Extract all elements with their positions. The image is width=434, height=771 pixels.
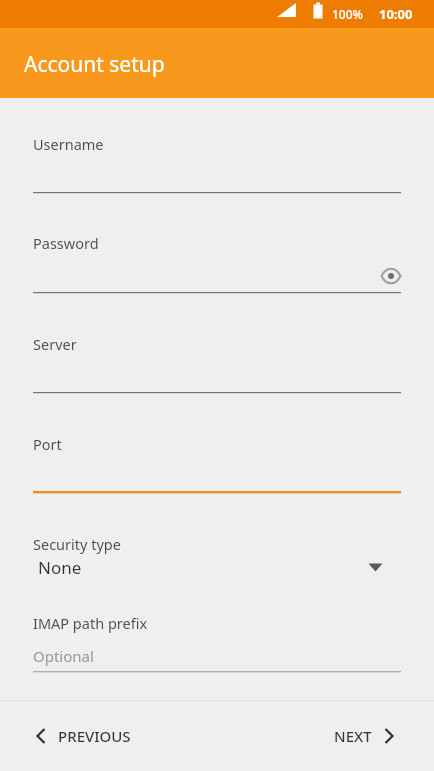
staticText: IMAP path prefix	[33, 613, 148, 633]
staticText: PREVIOUS	[58, 726, 131, 746]
button[interactable]: Port	[0, 426, 434, 504]
button[interactable]: Password	[0, 225, 434, 303]
staticText: Server	[33, 334, 77, 354]
button[interactable]: IMAP path prefix	[0, 604, 434, 676]
staticText: Username	[33, 134, 104, 154]
staticText: Optional	[33, 646, 94, 666]
staticText: None	[38, 556, 82, 579]
staticText: Security type	[33, 534, 121, 554]
button[interactable]: Server	[0, 326, 434, 404]
button[interactable]: NEXT	[334, 708, 394, 764]
button[interactable]: Username	[0, 126, 434, 204]
button[interactable]: Show password	[379, 264, 403, 288]
staticText: 10:00	[379, 5, 413, 23]
button[interactable]: Security type	[0, 526, 434, 592]
staticText: Account setup	[24, 50, 165, 79]
staticText: NEXT	[334, 726, 372, 746]
staticText: Password	[33, 233, 99, 253]
staticText: 100%	[332, 6, 363, 22]
button[interactable]: PREVIOUS	[36, 708, 131, 764]
staticText: Port	[33, 434, 62, 454]
